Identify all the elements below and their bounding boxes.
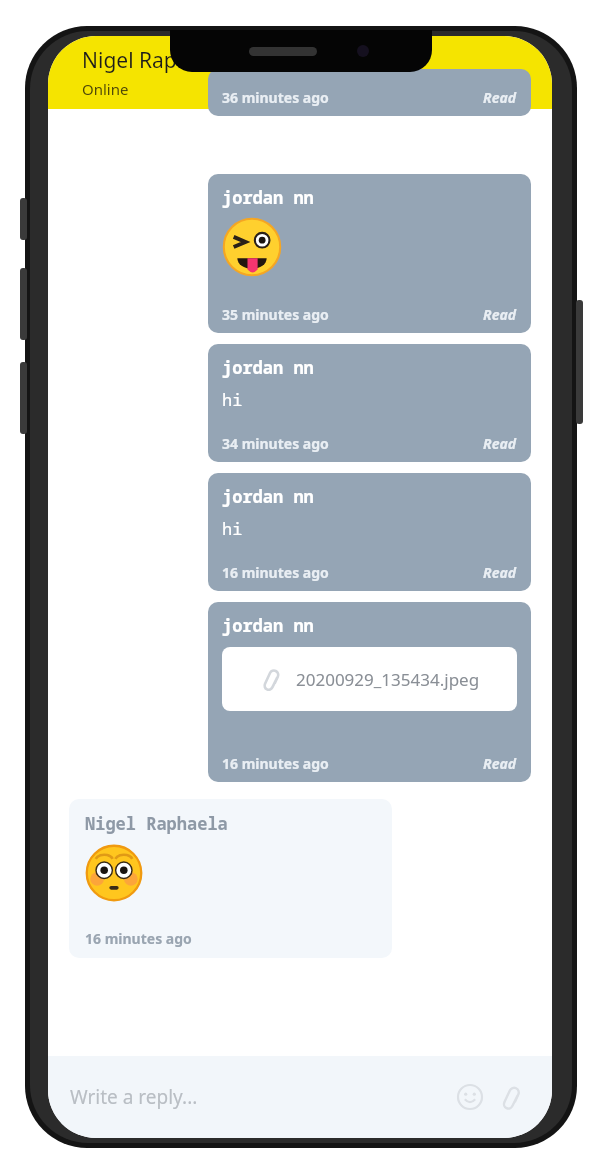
staticText: 36 minutes ago [222, 88, 329, 107]
staticText: 16 minutes ago [85, 929, 192, 948]
staticText: jordan nn [222, 186, 314, 209]
staticText: 16 minutes ago [222, 563, 329, 582]
staticText: 16 minutes ago [222, 754, 329, 773]
staticText: Read [483, 563, 517, 582]
staticText: jordan nn [222, 485, 314, 508]
staticText: Nigel Raphaela [85, 812, 228, 835]
staticText: hi [222, 517, 243, 540]
staticText: Online [82, 79, 129, 99]
staticText: Nigel Raphaela [82, 46, 231, 75]
staticText: 35 minutes ago [222, 305, 329, 324]
button[interactable]: jordan nn [208, 174, 531, 333]
staticText: jordan nn [222, 356, 314, 379]
staticText: Read [483, 305, 517, 324]
staticText: Read [483, 754, 517, 773]
button[interactable]: 20200929_135434.jpeg [222, 647, 517, 711]
button[interactable]: 36 minutes ago [208, 69, 531, 116]
button[interactable]: jordan nn [208, 344, 531, 462]
staticText: 20200929_135434.jpeg [296, 668, 480, 691]
button[interactable]: Insert emoji [452, 1079, 488, 1115]
staticText: 34 minutes ago [222, 434, 329, 453]
button[interactable]: Attach file [494, 1079, 530, 1115]
button[interactable]: jordan nn [208, 473, 531, 591]
button[interactable]: Nigel Raphaela [69, 799, 392, 958]
staticText: hi [222, 388, 243, 411]
staticText: Write a reply... [70, 1084, 198, 1110]
staticText: Read [483, 434, 517, 453]
button[interactable]: Nigel Raphaela [48, 36, 552, 109]
button[interactable]: jordan nn [208, 602, 531, 782]
staticText: Read [483, 88, 517, 107]
staticText: jordan nn [222, 614, 314, 637]
button[interactable]: Write a reply... [70, 1084, 198, 1110]
